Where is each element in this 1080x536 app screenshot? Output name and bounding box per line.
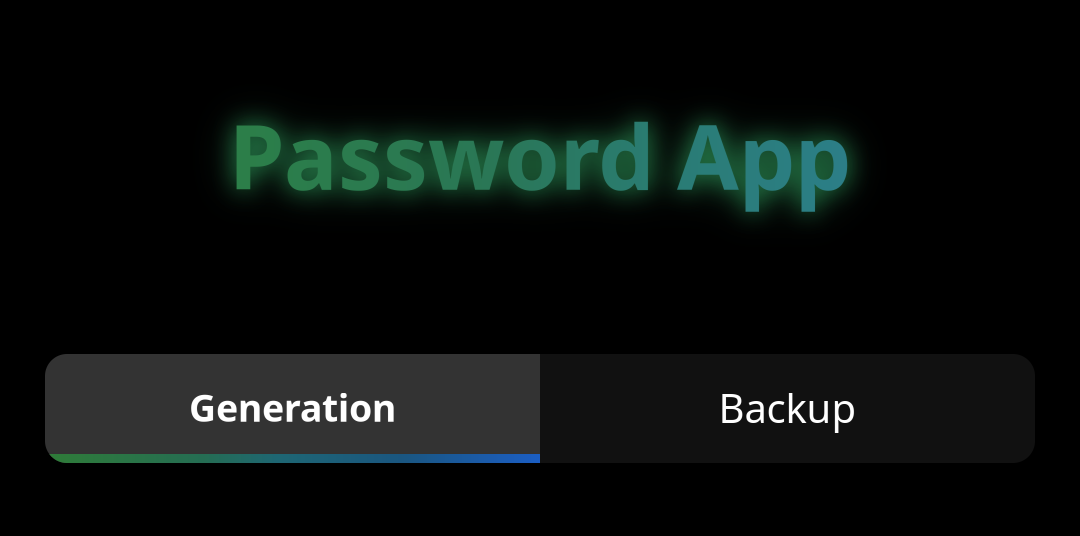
button[interactable]: Generation: [45, 354, 540, 463]
button[interactable]: Backup: [540, 354, 1035, 463]
staticText: Generation: [189, 382, 396, 432]
staticText: Backup: [718, 381, 856, 434]
